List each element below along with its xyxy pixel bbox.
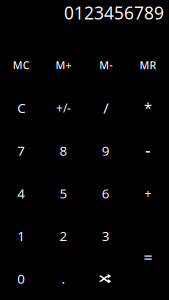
staticText: + bbox=[144, 185, 151, 201]
staticText: M+ bbox=[55, 58, 71, 72]
staticText: 0 bbox=[17, 270, 25, 287]
button[interactable]: +/- bbox=[42, 86, 84, 129]
button[interactable]: M+ bbox=[42, 44, 84, 86]
button[interactable]: = bbox=[127, 215, 169, 300]
button[interactable]: 7 bbox=[0, 129, 42, 172]
staticText: 5 bbox=[59, 184, 67, 202]
staticText: 1 bbox=[17, 227, 25, 245]
button[interactable]: 5 bbox=[42, 172, 84, 215]
button[interactable]: M- bbox=[84, 44, 127, 86]
staticText: 3 bbox=[102, 227, 110, 245]
button[interactable]: / bbox=[84, 86, 127, 129]
staticText: +/- bbox=[56, 100, 71, 116]
staticText: . bbox=[61, 270, 65, 287]
button[interactable]: Swap operands bbox=[84, 257, 127, 300]
staticText: 7 bbox=[17, 142, 25, 159]
button[interactable]: 3 bbox=[84, 215, 127, 257]
button[interactable]: MR bbox=[127, 44, 169, 86]
staticText: 6 bbox=[102, 184, 110, 202]
staticText: 8 bbox=[59, 142, 67, 159]
button[interactable]: 1 bbox=[0, 215, 42, 257]
staticText: 9 bbox=[102, 142, 110, 159]
button[interactable]: 4 bbox=[0, 172, 42, 215]
staticText: * bbox=[144, 98, 152, 118]
button[interactable]: * bbox=[127, 86, 169, 129]
button[interactable]: 0 bbox=[0, 257, 42, 300]
staticText: 2 bbox=[59, 227, 67, 245]
button[interactable]: + bbox=[127, 172, 169, 215]
button[interactable]: - bbox=[127, 129, 169, 172]
button[interactable]: 6 bbox=[84, 172, 127, 215]
button[interactable]: C bbox=[0, 86, 42, 129]
button[interactable]: 8 bbox=[42, 129, 84, 172]
staticText: 4 bbox=[17, 184, 25, 202]
staticText: MR bbox=[139, 58, 156, 72]
staticText: / bbox=[103, 98, 108, 118]
staticText: - bbox=[145, 139, 151, 162]
staticText: 0123456789 bbox=[64, 1, 164, 25]
staticText: MC bbox=[13, 58, 30, 72]
button[interactable]: 2 bbox=[42, 215, 84, 257]
staticText: M- bbox=[99, 58, 112, 72]
staticText: = bbox=[143, 247, 152, 268]
button[interactable]: 9 bbox=[84, 129, 127, 172]
button[interactable]: MC bbox=[0, 44, 42, 86]
button[interactable]: . bbox=[42, 257, 84, 300]
staticText: C bbox=[17, 99, 25, 117]
